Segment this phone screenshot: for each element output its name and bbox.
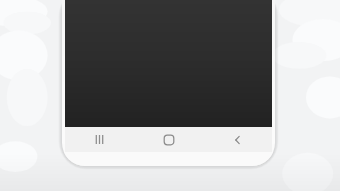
button[interactable]: Home <box>134 127 203 152</box>
button[interactable]: Recents <box>65 127 134 152</box>
button[interactable]: Back <box>203 127 272 152</box>
